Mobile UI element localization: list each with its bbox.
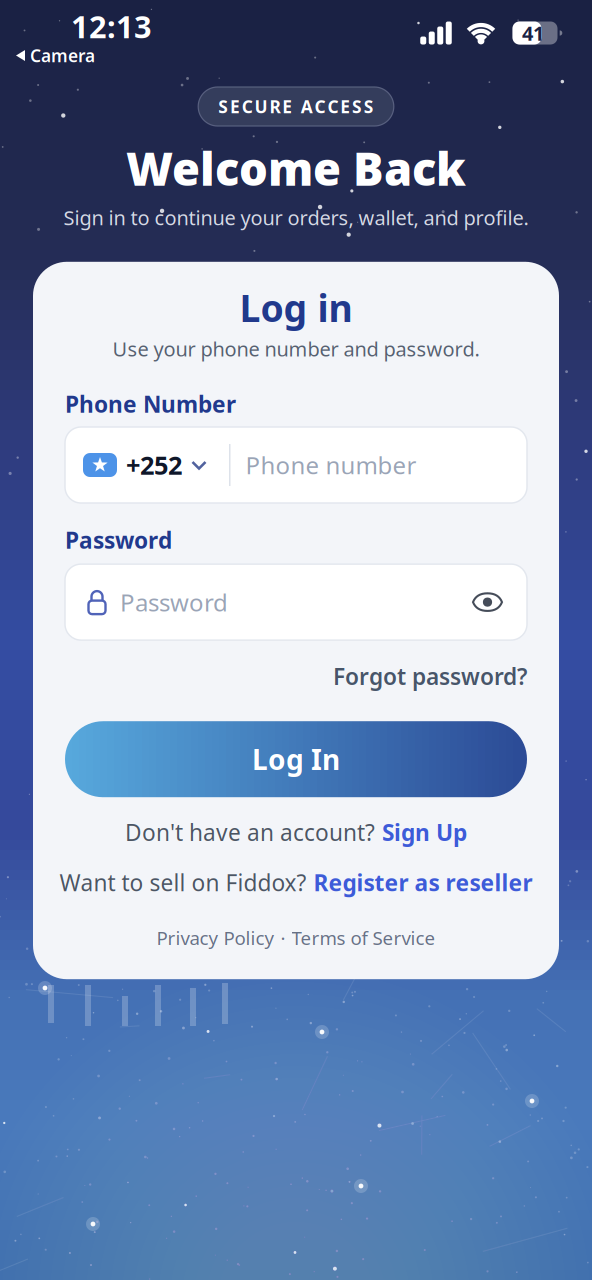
button[interactable]: Country code +252: [65, 448, 207, 482]
staticText: Camera: [30, 44, 95, 67]
staticText: ·: [280, 925, 285, 950]
staticText: Log In: [252, 741, 340, 778]
button[interactable]: Forgot password?: [333, 661, 527, 691]
staticText: Password: [65, 525, 172, 555]
staticText: Phone number: [245, 449, 416, 481]
staticText: SECURE ACCESS: [218, 95, 374, 118]
staticText: Password: [120, 586, 228, 618]
button[interactable]: Back to Camera: [16, 44, 95, 67]
button[interactable]: Phone number: [230, 449, 527, 481]
button[interactable]: Show password: [472, 592, 527, 612]
button[interactable]: Password: [65, 586, 472, 618]
staticText: Sign in to continue your orders, wallet,…: [63, 204, 528, 231]
staticText: Log in: [239, 283, 352, 332]
staticText: 41: [522, 20, 544, 46]
staticText: Forgot password?: [333, 661, 527, 691]
staticText: Privacy Policy: [156, 925, 274, 950]
staticText: 12:13: [71, 6, 152, 47]
staticText: Register as reseller: [313, 867, 532, 897]
staticText: +252: [126, 448, 182, 482]
button[interactable]: Log In: [65, 721, 527, 797]
button[interactable]: Privacy Policy: [156, 925, 274, 950]
staticText: Terms of Service: [291, 925, 435, 950]
button[interactable]: Terms of Service: [291, 925, 435, 950]
button[interactable]: Register as reseller: [313, 867, 532, 897]
staticText: Sign Up: [382, 817, 467, 847]
staticText: Don't have an account?: [125, 817, 375, 847]
staticText: Use your phone number and password.: [112, 335, 479, 362]
button[interactable]: Sign Up: [382, 817, 467, 847]
staticText: Want to sell on Fiddox?: [59, 867, 306, 897]
staticText: Phone Number: [65, 389, 236, 419]
staticText: Welcome Back: [126, 138, 466, 198]
